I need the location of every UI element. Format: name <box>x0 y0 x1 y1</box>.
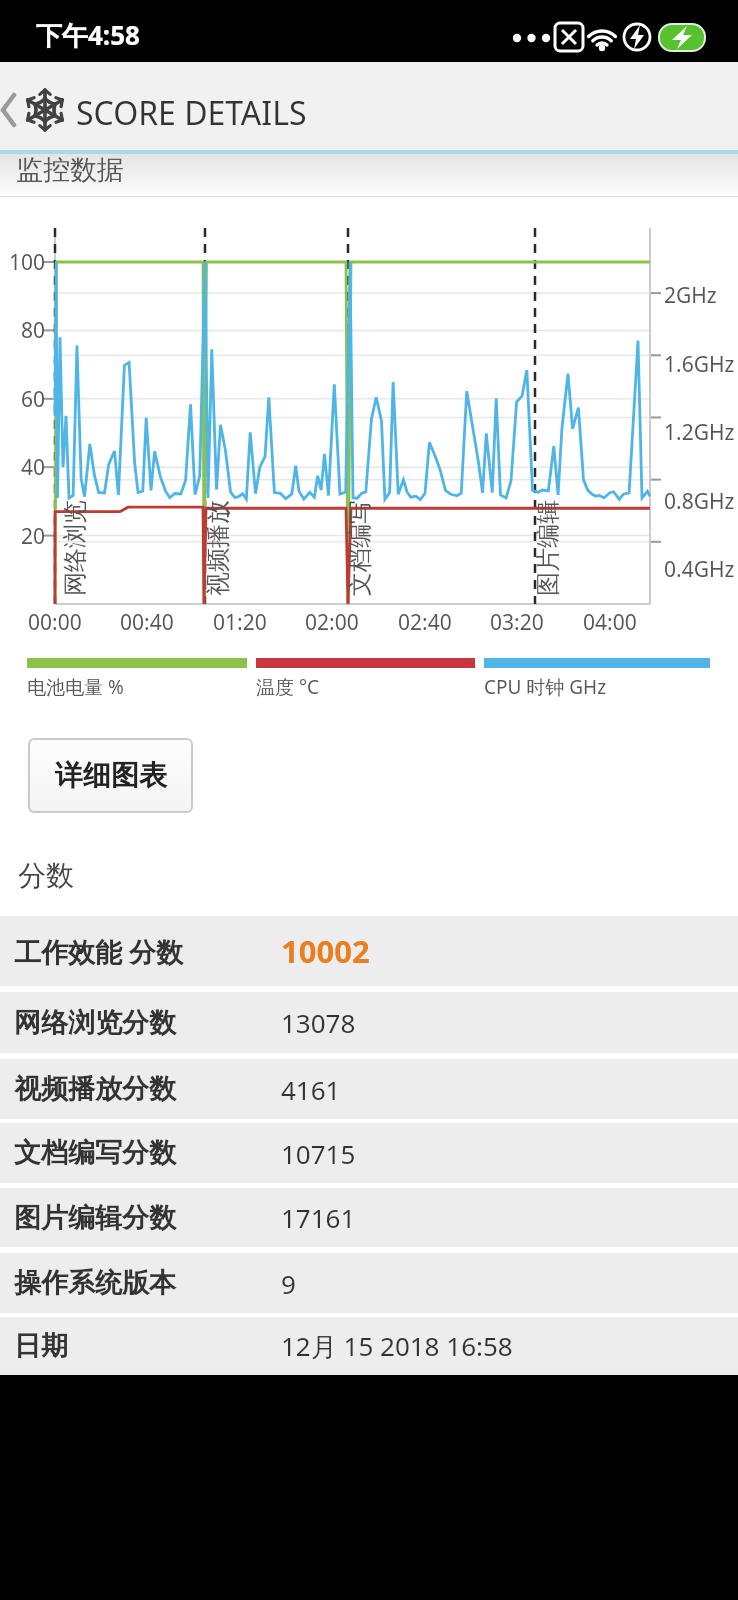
staticText: 温度 °C <box>256 674 320 700</box>
staticText: 图片编辑分数 <box>14 1201 176 1235</box>
staticText: 10715 <box>281 1136 356 1171</box>
staticText: 日期 <box>14 1329 68 1363</box>
staticText: 0.8GHz <box>664 487 735 516</box>
staticText: 00:00 <box>28 608 82 637</box>
staticText: 01:20 <box>213 608 267 637</box>
staticText: 04:00 <box>583 608 637 637</box>
staticText: 操作系统版本 <box>14 1266 176 1300</box>
staticText: 文档编写 <box>345 500 375 596</box>
button[interactable] <box>0 62 70 150</box>
button[interactable]: 操作系统版本 <box>0 1253 738 1313</box>
staticText: 13078 <box>281 1005 356 1040</box>
staticText: 网络浏览分数 <box>14 1006 176 1040</box>
staticText: 图片编辑 <box>533 500 563 596</box>
staticText: 00:40 <box>120 608 174 637</box>
staticText: 1.6GHz <box>664 350 735 379</box>
staticText: 17161 <box>281 1200 356 1235</box>
staticText: 10002 <box>281 930 370 972</box>
staticText: 下午4:58 <box>36 17 140 53</box>
staticText: 视频播放分数 <box>14 1072 176 1106</box>
staticText: 视频播放 <box>203 500 233 596</box>
staticText: 02:40 <box>398 608 452 637</box>
staticText: 100 <box>9 248 46 277</box>
button[interactable]: 网络浏览分数 <box>0 992 738 1053</box>
staticText: 文档编写分数 <box>14 1136 176 1170</box>
staticText: 12月 15 2018 16:58 <box>281 1328 513 1364</box>
button[interactable]: 视频播放分数 <box>0 1059 738 1119</box>
staticText: 2GHz <box>664 281 717 310</box>
button[interactable]: 工作效能 分数 <box>0 916 738 986</box>
staticText: 详细图表 <box>55 758 167 793</box>
staticText: 分数 <box>18 858 74 893</box>
button[interactable]: 详细图表 <box>28 738 193 813</box>
staticText: 网络浏览 <box>60 500 90 596</box>
staticText: 60 <box>21 385 46 414</box>
staticText: 40 <box>21 453 46 482</box>
staticText: SCORE DETAILS <box>76 91 307 135</box>
button[interactable]: 文档编写分数 <box>0 1123 738 1183</box>
staticText: 4161 <box>281 1072 341 1107</box>
button[interactable]: 日期 <box>0 1317 738 1375</box>
staticText: 02:00 <box>305 608 359 637</box>
staticText: 20 <box>21 522 46 551</box>
staticText: 9 <box>281 1266 296 1301</box>
staticText: 电池电量 % <box>27 674 124 700</box>
staticText: 监控数据 <box>16 153 124 187</box>
staticText: CPU 时钟 GHz <box>484 674 607 700</box>
staticText: 80 <box>21 316 46 345</box>
staticText: 0.4GHz <box>664 555 735 584</box>
staticText: 03:20 <box>490 608 544 637</box>
button[interactable]: 图片编辑分数 <box>0 1188 738 1247</box>
staticText: 1.2GHz <box>664 418 735 447</box>
staticText: 工作效能 分数 <box>14 933 184 970</box>
